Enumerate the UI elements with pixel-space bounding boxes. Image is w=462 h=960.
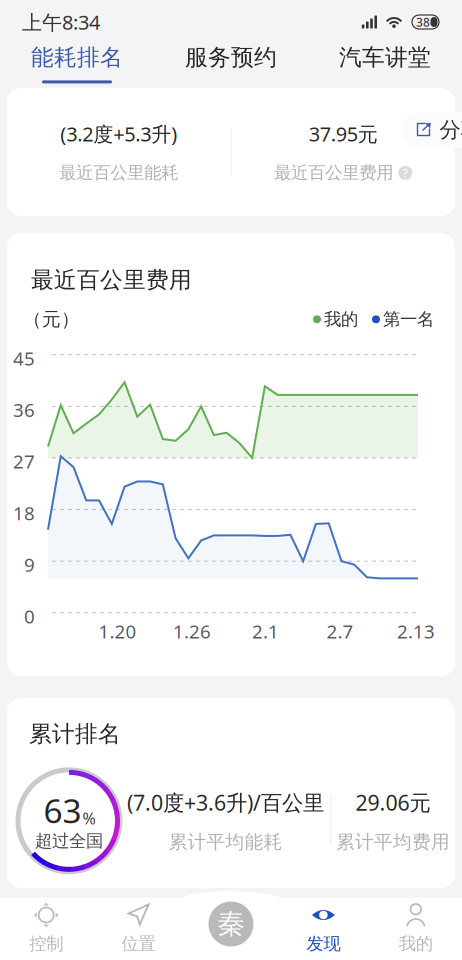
staticText: 秦 bbox=[217, 907, 245, 941]
staticText: 45 bbox=[13, 346, 35, 371]
staticText: 控制 bbox=[29, 933, 63, 954]
staticText: % bbox=[82, 808, 95, 829]
staticText: 37.95元 bbox=[309, 121, 378, 147]
staticText: （元） bbox=[23, 308, 80, 331]
button[interactable]: 秦 首页 bbox=[205, 898, 257, 950]
staticText: 36 bbox=[13, 397, 35, 422]
staticText: 发现 bbox=[306, 933, 340, 954]
staticText: 最近百公里费用 bbox=[274, 162, 393, 183]
staticText: 9 bbox=[24, 552, 35, 577]
staticText: 18 bbox=[13, 501, 35, 525]
staticText: 0 bbox=[24, 604, 35, 629]
staticText: 1.26 bbox=[173, 619, 211, 644]
staticText: 我的 bbox=[324, 309, 358, 330]
staticText: 累计平均能耗 bbox=[168, 830, 282, 853]
staticText: ? bbox=[402, 164, 408, 182]
staticText: 我的 bbox=[399, 933, 433, 954]
button[interactable]: 发现 bbox=[277, 890, 370, 960]
staticText: 能耗排名 bbox=[31, 44, 123, 71]
staticText: 29.06元 bbox=[355, 788, 430, 816]
button[interactable]: 控制 bbox=[0, 890, 92, 960]
button[interactable]: 汽车讲堂 bbox=[308, 44, 462, 86]
staticText: 2.7 bbox=[326, 619, 353, 644]
button[interactable]: 服务预约 bbox=[154, 44, 308, 86]
staticText: 汽车讲堂 bbox=[339, 44, 431, 71]
button[interactable]: 能耗排名 bbox=[0, 44, 154, 86]
staticText: 2.1 bbox=[252, 619, 279, 644]
staticText: 分享 bbox=[439, 117, 462, 143]
staticText: 上午8:34 bbox=[22, 9, 100, 35]
staticText: (7.0度+3.6升)/百公里 bbox=[127, 788, 324, 816]
staticText: 第一名 bbox=[383, 309, 434, 330]
button[interactable]: 我的 bbox=[370, 890, 462, 960]
button[interactable]: 位置 bbox=[92, 890, 185, 960]
staticText: (3.2度+5.3升) bbox=[60, 121, 177, 147]
staticText: 超过全国 bbox=[35, 830, 103, 852]
staticText: 累计平均费用 bbox=[336, 830, 450, 853]
staticText: 1.20 bbox=[98, 619, 136, 644]
button[interactable]: 分享 bbox=[401, 112, 462, 148]
staticText: 最近百公里能耗 bbox=[59, 162, 178, 183]
staticText: 最近百公里费用 bbox=[31, 266, 192, 294]
staticText: 2.13 bbox=[397, 619, 435, 644]
staticText: 服务预约 bbox=[185, 44, 277, 71]
staticText: 63 bbox=[43, 788, 81, 832]
staticText: 38 bbox=[416, 14, 430, 30]
staticText: 累计排名 bbox=[29, 720, 121, 748]
staticText: 27 bbox=[13, 449, 35, 474]
staticText: 位置 bbox=[122, 933, 156, 954]
